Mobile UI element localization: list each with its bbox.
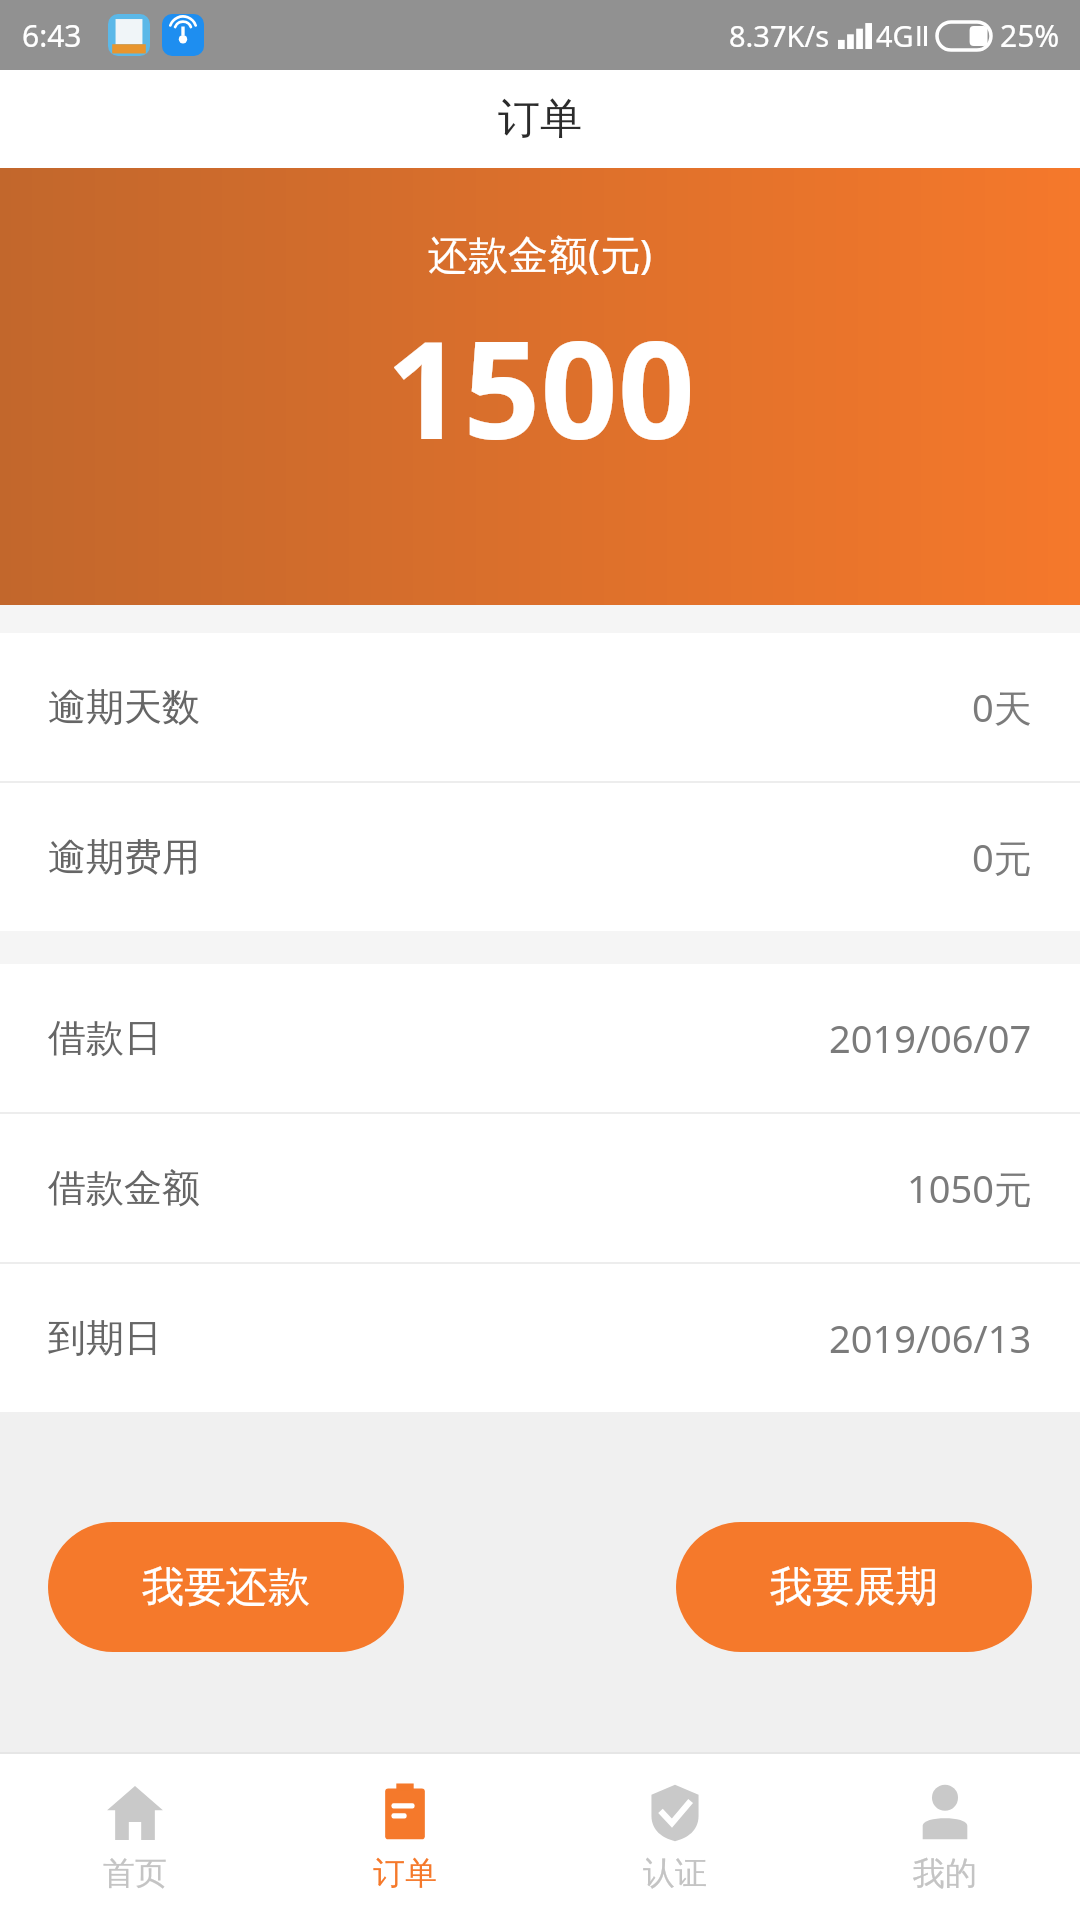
staticText: 0元 [972,831,1032,883]
staticText: 8.37K/s [729,16,830,55]
button[interactable]: 借款日 [0,964,1080,1112]
staticText: 到期日 [48,1314,162,1362]
staticText: 首页 [103,1853,167,1893]
staticText: 借款日 [48,1014,162,1062]
button[interactable]: 我要展期 [676,1522,1032,1652]
button[interactable]: 我的 [810,1754,1080,1920]
staticText: 2019/06/13 [829,1312,1032,1364]
button[interactable]: 逾期费用 [0,783,1080,931]
staticText: 逾期费用 [48,833,200,881]
staticText: 借款金额 [48,1164,200,1212]
staticText: 0天 [972,681,1032,733]
staticText: 还款金额(元) [428,226,652,281]
staticText: 订单 [498,93,582,146]
button[interactable]: 到期日 [0,1264,1080,1412]
staticText: 4G [876,16,914,55]
button[interactable]: 订单 [270,1754,540,1920]
staticText: 1500 [386,295,695,479]
staticText: 我要还款 [142,1561,310,1614]
staticText: 6:43 [22,15,82,56]
staticText: 25% [1000,15,1060,56]
staticText: 订单 [373,1853,437,1893]
staticText: 2019/06/07 [829,1012,1032,1064]
button[interactable]: 我要还款 [48,1522,404,1652]
staticText: 1050元 [907,1162,1032,1214]
button[interactable]: 认证 [540,1754,810,1920]
button[interactable]: 首页 [0,1754,270,1920]
button[interactable]: 逾期天数 [0,633,1080,781]
staticText: 我的 [913,1853,977,1893]
button[interactable]: 借款金额 [0,1114,1080,1262]
staticText: 逾期天数 [48,683,200,731]
staticText: 认证 [643,1853,707,1893]
staticText: 我要展期 [770,1561,938,1614]
